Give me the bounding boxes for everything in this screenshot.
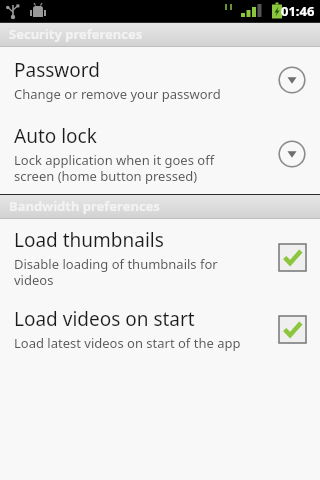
staticText: Password xyxy=(14,57,100,83)
button[interactable]: Password xyxy=(0,47,320,115)
staticText: Disable loading of thumbnails for videos xyxy=(14,255,218,288)
button[interactable]: Load videos on start xyxy=(0,298,320,364)
staticText: Load thumbnails xyxy=(14,227,164,253)
staticText: 01:46 xyxy=(281,2,315,20)
button[interactable]: Checkbox, checked xyxy=(279,244,306,271)
staticText: Load videos on start xyxy=(14,306,195,332)
staticText: Load latest videos on start of the app xyxy=(14,334,241,352)
button[interactable]: Expand xyxy=(278,140,306,168)
staticText: Change or remove your password xyxy=(14,85,221,103)
button[interactable]: Auto lock xyxy=(0,115,320,194)
staticText: Auto lock xyxy=(14,123,97,149)
staticText: Security preferences xyxy=(9,25,143,43)
staticText: Bandwidth preferences xyxy=(9,197,160,215)
staticText: Lock application when it goes off screen… xyxy=(14,151,215,184)
button[interactable]: Checkbox, checked xyxy=(279,316,306,343)
button[interactable]: Load thumbnails xyxy=(0,219,320,298)
button[interactable]: Expand xyxy=(278,66,306,94)
